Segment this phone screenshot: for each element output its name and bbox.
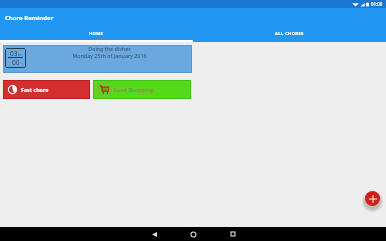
staticText: 03 [10,49,18,58]
staticText: Fast chore [21,86,49,93]
staticText: ALL CHORES [275,31,304,37]
staticText: Doing the dishes [88,45,131,52]
button[interactable]: Good Shopping [94,81,190,98]
staticText: Good Shopping [113,86,153,93]
staticText: 00 [12,58,20,67]
button[interactable]: Home [174,227,213,241]
staticText: hr [18,53,22,57]
staticText: 01:00 [371,1,383,7]
button[interactable]: ALL CHORES [193,30,386,42]
staticText: HOME [89,31,104,37]
button[interactable]: Recents [213,227,252,241]
button[interactable]: Back [135,227,174,241]
staticText: Monday 25th of January 2016 [72,52,147,59]
staticText: Chore Reminder [5,14,54,22]
button[interactable]: Fast chore [4,81,89,98]
button[interactable]: HOME [0,30,193,42]
button[interactable]: Add chore [365,191,380,206]
button[interactable]: 03 [3,45,192,73]
